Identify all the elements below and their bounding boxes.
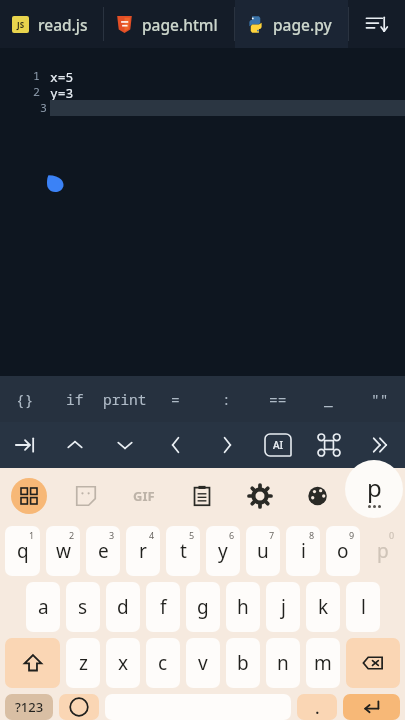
button[interactable]: print bbox=[100, 376, 150, 422]
staticText: 4 bbox=[149, 529, 155, 541]
button[interactable]: k bbox=[306, 582, 340, 632]
staticText: 0 bbox=[389, 529, 395, 541]
button[interactable]: Settings bbox=[231, 468, 289, 524]
staticText: GIF bbox=[133, 487, 155, 505]
button[interactable]: Backspace bbox=[346, 638, 400, 688]
button[interactable]: AI bbox=[252, 422, 303, 468]
button[interactable]: _ bbox=[303, 376, 354, 422]
button[interactable]: p bbox=[366, 526, 400, 576]
button[interactable]: a bbox=[26, 582, 60, 632]
button[interactable]: u bbox=[246, 526, 280, 576]
button[interactable]: w bbox=[46, 526, 80, 576]
button[interactable]: n bbox=[266, 638, 300, 688]
button[interactable]: v bbox=[186, 638, 220, 688]
button[interactable]: Right bbox=[201, 422, 252, 468]
staticText: z bbox=[79, 650, 88, 676]
button[interactable]: i bbox=[286, 526, 320, 576]
button[interactable]: = bbox=[150, 376, 201, 422]
button[interactable]: f bbox=[146, 582, 180, 632]
button[interactable]: == bbox=[252, 376, 303, 422]
staticText: i bbox=[301, 538, 306, 564]
staticText: == bbox=[269, 389, 287, 409]
button[interactable]: {} bbox=[0, 376, 50, 422]
staticText: h bbox=[237, 594, 249, 620]
staticText: page.py bbox=[273, 14, 332, 35]
button[interactable]: r bbox=[126, 526, 160, 576]
button[interactable]: h bbox=[226, 582, 260, 632]
staticText: f bbox=[160, 594, 167, 620]
staticText: v bbox=[198, 650, 208, 676]
staticText: 7 bbox=[269, 529, 275, 541]
staticText: w bbox=[56, 538, 71, 564]
button[interactable]: . bbox=[297, 694, 337, 720]
button[interactable]: Command bbox=[303, 422, 354, 468]
button[interactable]: e bbox=[86, 526, 120, 576]
staticText: 2 bbox=[69, 529, 75, 541]
staticText: k bbox=[318, 594, 329, 620]
button[interactable]: m bbox=[306, 638, 340, 688]
button[interactable]: g bbox=[186, 582, 220, 632]
button[interactable]: GIF bbox=[115, 468, 173, 524]
staticText: p bbox=[377, 538, 389, 564]
staticText: AI bbox=[273, 438, 284, 452]
staticText: : bbox=[222, 389, 231, 409]
staticText: read.js bbox=[38, 14, 88, 35]
staticText: t bbox=[180, 538, 187, 564]
button[interactable]: Apps bbox=[0, 468, 57, 524]
staticText: 8 bbox=[309, 529, 315, 541]
staticText: 1 bbox=[33, 68, 40, 84]
button[interactable]: page.py bbox=[235, 0, 348, 48]
staticText: page.html bbox=[142, 14, 218, 35]
staticText: m bbox=[314, 650, 332, 676]
button[interactable]: t bbox=[166, 526, 200, 576]
staticText: s bbox=[78, 594, 88, 620]
button[interactable]: JS bbox=[0, 0, 103, 48]
button[interactable]: x bbox=[106, 638, 140, 688]
staticText: l bbox=[361, 594, 366, 620]
staticText: {} bbox=[16, 389, 34, 409]
button[interactable]: if bbox=[50, 376, 100, 422]
button[interactable]: page.html bbox=[104, 0, 234, 48]
button[interactable]: d bbox=[106, 582, 140, 632]
button[interactable]: : bbox=[201, 376, 252, 422]
button[interactable]: b bbox=[226, 638, 260, 688]
staticText: y=3 bbox=[50, 84, 74, 100]
button[interactable]: q bbox=[5, 526, 40, 576]
button[interactable]: Stickers bbox=[57, 468, 115, 524]
button[interactable]: s bbox=[66, 582, 100, 632]
button[interactable]: "" bbox=[354, 376, 405, 422]
button[interactable]: Tab bbox=[0, 422, 50, 468]
button[interactable]: z bbox=[66, 638, 100, 688]
button[interactable]: Enter bbox=[343, 694, 400, 720]
button[interactable]: o bbox=[326, 526, 360, 576]
button[interactable]: More bbox=[354, 422, 405, 468]
staticText: a bbox=[38, 594, 49, 620]
button[interactable]: c bbox=[146, 638, 180, 688]
button[interactable]: Sort bbox=[349, 0, 405, 48]
staticText: 6 bbox=[229, 529, 235, 541]
button[interactable]: Down bbox=[100, 422, 150, 468]
staticText: _ bbox=[324, 389, 333, 409]
button[interactable]: Left bbox=[150, 422, 201, 468]
button[interactable]: y bbox=[206, 526, 240, 576]
staticText: o bbox=[337, 538, 349, 564]
staticText: b bbox=[237, 650, 249, 676]
button[interactable]: Emoji bbox=[59, 694, 99, 720]
staticText: q bbox=[17, 538, 29, 564]
staticText: x=5 bbox=[50, 68, 74, 84]
staticText: r bbox=[139, 538, 147, 564]
staticText: if bbox=[66, 389, 84, 409]
staticText: 9 bbox=[349, 529, 355, 541]
staticText: print bbox=[103, 389, 147, 409]
button[interactable]: Theme bbox=[289, 468, 347, 524]
button[interactable]: Up bbox=[50, 422, 100, 468]
button[interactable]: j bbox=[266, 582, 300, 632]
button[interactable]: l bbox=[346, 582, 380, 632]
staticText: y bbox=[218, 538, 228, 564]
button[interactable]: Shift bbox=[5, 638, 60, 688]
button[interactable]: ?123 bbox=[5, 694, 53, 720]
button[interactable]: Clipboard bbox=[173, 468, 231, 524]
staticText: n bbox=[277, 650, 289, 676]
staticText: 1 bbox=[29, 529, 35, 541]
